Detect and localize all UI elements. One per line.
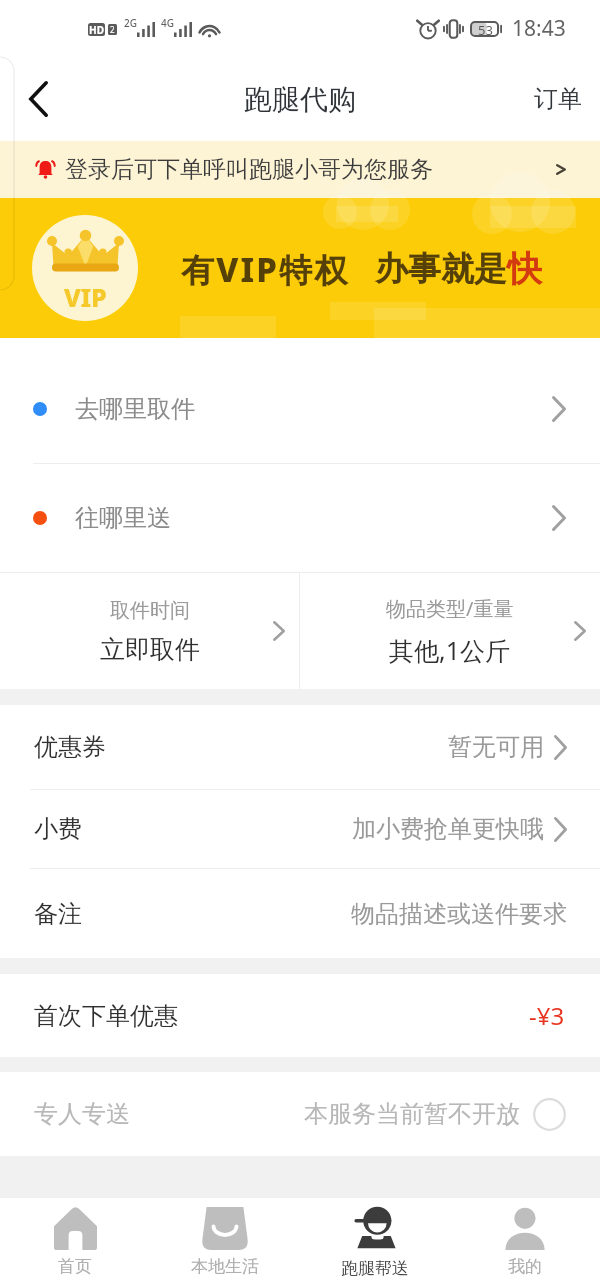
staticText: 有VIP特权 xyxy=(181,247,350,292)
staticText: HD xyxy=(89,23,104,36)
button[interactable]: 订单 xyxy=(534,57,600,141)
staticText: 订单 xyxy=(534,84,582,114)
staticText: 立即取件 xyxy=(100,634,200,665)
button[interactable]: Back xyxy=(0,57,76,141)
staticText: 物品类型/重量 xyxy=(386,595,514,622)
staticText: 物品描述或送件要求 xyxy=(351,899,567,929)
button[interactable]: 去哪里取件 xyxy=(0,338,600,463)
button[interactable]: 本地生活 xyxy=(150,1198,300,1283)
staticText: 取件时间 xyxy=(110,598,190,623)
staticText: 本地生活 xyxy=(191,1256,259,1277)
staticText: 专人专送 xyxy=(34,1099,130,1129)
staticText: 18:43 xyxy=(512,14,566,43)
staticText: VIP xyxy=(64,280,107,314)
button[interactable]: 取件时间 xyxy=(0,573,299,689)
staticText: 快 xyxy=(507,247,542,291)
staticText: 我的 xyxy=(508,1256,542,1277)
button[interactable]: 首页 xyxy=(0,1198,150,1283)
staticText: -¥3 xyxy=(529,999,565,1032)
staticText: 其他,1公斤 xyxy=(389,633,511,667)
button[interactable]: 优惠券 xyxy=(0,705,600,789)
staticText: 去哪里取件 xyxy=(75,394,195,424)
staticText: 本服务当前暂不开放 xyxy=(304,1099,520,1129)
staticText: 往哪里送 xyxy=(75,503,171,533)
staticText: 2 xyxy=(110,24,115,35)
button[interactable]: 备注 xyxy=(0,869,600,958)
button[interactable]: 小费 xyxy=(0,790,600,868)
button[interactable]: 我的 xyxy=(450,1198,600,1283)
staticText: 2G xyxy=(124,16,137,30)
staticText: 跑腿代购 xyxy=(244,82,356,117)
staticText: 小费 xyxy=(34,814,82,844)
staticText: 加小费抢单更快哦 xyxy=(352,814,544,844)
staticText: 暂无可用 xyxy=(448,732,544,762)
staticText: 优惠券 xyxy=(34,732,106,762)
staticText: 登录后可下单呼叫跑腿小哥为您服务 xyxy=(65,155,433,184)
button[interactable]: 首次下单优惠 xyxy=(0,974,600,1057)
staticText: 首页 xyxy=(58,1256,92,1277)
button[interactable]: 往哪里送 xyxy=(0,464,600,572)
staticText: 首次下单优惠 xyxy=(34,1001,178,1031)
staticText: 办事就是 xyxy=(375,248,507,290)
button[interactable]: 登录后可下单呼叫跑腿小哥为您服务 xyxy=(0,141,600,198)
button[interactable]: 跑腿帮送 xyxy=(300,1198,450,1283)
staticText: 4G xyxy=(161,16,174,30)
staticText: 备注 xyxy=(34,899,82,929)
button[interactable]: 专人专送 xyxy=(0,1072,600,1156)
staticText: 53 xyxy=(478,21,493,37)
staticText: 跑腿帮送 xyxy=(341,1258,409,1279)
button[interactable]: 物品类型/重量 xyxy=(300,573,600,689)
